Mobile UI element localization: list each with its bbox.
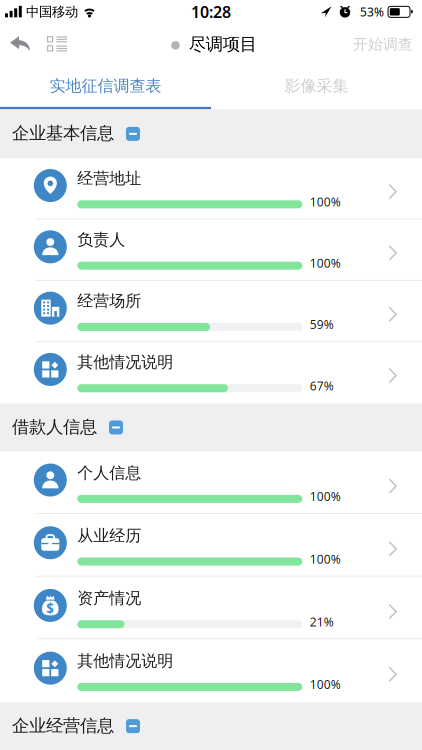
button[interactable]: 目录 xyxy=(30,38,67,54)
button[interactable]: 开始调查 xyxy=(353,37,422,55)
button[interactable]: 其他情况说明 xyxy=(0,342,422,403)
button[interactable]: 其他情况说明 xyxy=(0,639,422,702)
staticText: 影像采集 xyxy=(284,76,348,96)
staticText: $ xyxy=(46,599,54,617)
button[interactable]: 折叠 企业基本信息 xyxy=(126,127,140,141)
button[interactable]: 折叠 企业经营信息 xyxy=(126,719,140,733)
staticText: 企业经营信息 xyxy=(12,715,114,736)
staticText: 100% xyxy=(310,676,341,692)
staticText: 其他情况说明 xyxy=(77,352,173,372)
staticText: 个人信息 xyxy=(77,463,141,483)
staticText: 100% xyxy=(310,551,341,567)
button[interactable]: $ xyxy=(0,577,422,639)
staticText: 53% xyxy=(360,4,384,20)
staticText: 从业经历 xyxy=(77,526,141,545)
button[interactable]: 经营地址 xyxy=(0,158,422,220)
staticText: 100% xyxy=(310,488,341,504)
button[interactable]: 负责人 xyxy=(0,220,422,281)
staticText: 实地征信调查表 xyxy=(49,76,161,96)
button[interactable]: 返回 xyxy=(0,38,30,53)
staticText: 中国移动 xyxy=(26,4,78,20)
staticText: 10:28 xyxy=(191,1,231,22)
button[interactable]: 折叠 借款人信息 xyxy=(109,420,123,434)
staticText: 企业基本信息 xyxy=(12,123,114,144)
staticText: 资产情况 xyxy=(77,588,141,608)
staticText: 尽调项目 xyxy=(189,34,257,55)
staticText: 负责人 xyxy=(77,230,125,249)
staticText: 经营场所 xyxy=(77,291,141,311)
button[interactable]: 个人信息 xyxy=(0,451,422,514)
button[interactable]: 从业经历 xyxy=(0,514,422,577)
staticText: 59% xyxy=(310,316,334,332)
button[interactable]: 实地征信调查表 xyxy=(0,65,211,107)
staticText: 67% xyxy=(310,378,334,394)
staticText: 其他情况说明 xyxy=(77,651,173,671)
button[interactable]: 影像采集 xyxy=(211,65,422,107)
button[interactable]: 经营场所 xyxy=(0,281,422,342)
staticText: 经营地址 xyxy=(77,168,141,188)
staticText: 100% xyxy=(310,194,341,210)
staticText: 21% xyxy=(310,614,334,630)
staticText: 开始调查 xyxy=(353,35,413,53)
staticText: 100% xyxy=(310,255,341,271)
staticText: 借款人信息 xyxy=(12,416,97,438)
